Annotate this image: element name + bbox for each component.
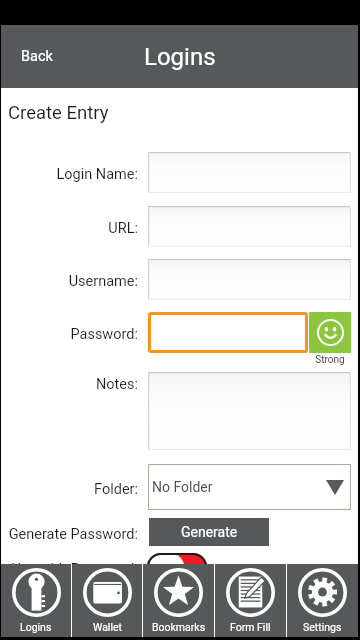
staticText: URL:	[1, 220, 138, 237]
staticText: Password:	[1, 326, 138, 343]
staticText: Generate	[181, 524, 238, 540]
staticText: Back	[21, 48, 53, 65]
staticText: Use with Password:	[1, 561, 138, 578]
button[interactable]	[148, 152, 351, 193]
staticText: Logins	[20, 621, 52, 633]
button[interactable]: Wallet	[72, 564, 142, 637]
button[interactable]: Generate	[149, 518, 269, 546]
button[interactable]: Settings	[287, 564, 358, 637]
button[interactable]: Bookmarks	[143, 564, 214, 637]
staticText: Create Entry	[8, 102, 109, 124]
button[interactable]: Toggle use with password	[147, 553, 207, 581]
button[interactable]	[148, 206, 351, 247]
button[interactable]: Back	[1, 39, 73, 74]
staticText: Form Fill	[230, 621, 271, 633]
staticText: Logins	[144, 43, 216, 71]
staticText: Wallet	[93, 621, 122, 633]
staticText: Settings	[303, 621, 342, 633]
button[interactable]: Form Fill	[215, 564, 286, 637]
staticText: Strong	[309, 354, 351, 366]
button[interactable]	[148, 372, 351, 450]
button[interactable]	[148, 259, 351, 300]
button[interactable]: No Folder	[148, 464, 351, 510]
staticText: Notes:	[1, 376, 138, 393]
button[interactable]: Password strength: strong	[309, 312, 351, 353]
staticText: Folder:	[1, 481, 138, 498]
staticText: Generate Password:	[1, 526, 138, 543]
button[interactable]: Logins	[1, 564, 71, 637]
staticText: Bookmarks	[152, 621, 206, 633]
staticText: No Folder	[152, 479, 326, 495]
staticText: Username:	[1, 273, 138, 290]
staticText: Login Name:	[1, 166, 138, 183]
button[interactable]	[148, 312, 308, 353]
